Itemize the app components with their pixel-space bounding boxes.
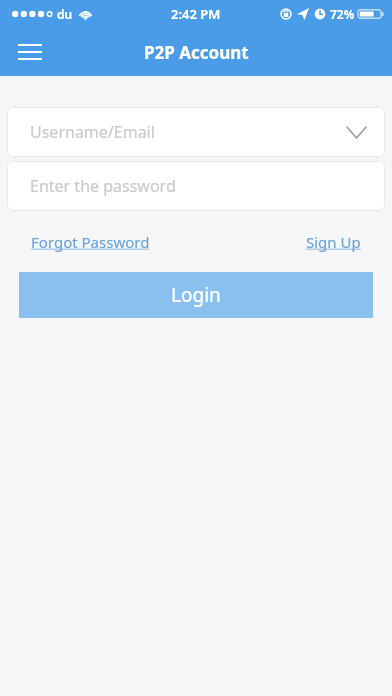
staticText: Enter the password — [30, 175, 176, 197]
staticText: 72% — [330, 6, 355, 22]
button[interactable]: Enter the password — [7, 161, 385, 211]
staticText: P2P Account — [144, 41, 249, 64]
staticText: Login — [171, 282, 221, 308]
button[interactable]: Login — [19, 272, 373, 318]
staticText: 2:42 PM — [171, 5, 221, 23]
button[interactable]: Sign Up — [306, 232, 361, 252]
button[interactable]: Open navigation menu — [8, 30, 52, 74]
button[interactable]: Forgot Password — [31, 232, 150, 252]
button[interactable]: Username/Email — [7, 107, 385, 157]
staticText: du — [57, 6, 73, 22]
other: Show saved accounts — [341, 117, 371, 147]
staticText: Username/Email — [30, 121, 155, 143]
